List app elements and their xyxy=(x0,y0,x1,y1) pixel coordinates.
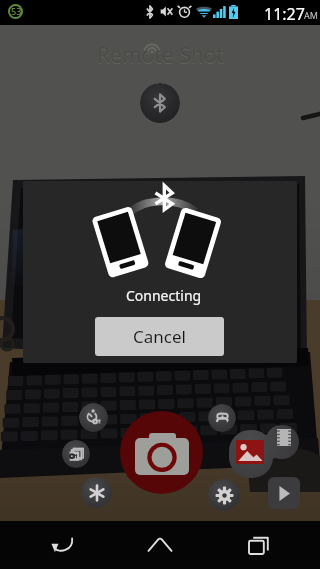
button[interactable]: Gallery xyxy=(228,423,300,481)
button[interactable]: Self timer xyxy=(79,403,108,432)
staticText: Cancel xyxy=(133,325,186,348)
staticText: Remote Shot xyxy=(97,42,224,71)
button[interactable]: Back xyxy=(26,521,98,569)
staticText: AM xyxy=(304,9,318,21)
staticText: 11:27 xyxy=(264,3,305,25)
button[interactable]: Settings xyxy=(208,479,240,511)
staticText: Remote Shot xyxy=(97,41,224,70)
button[interactable]: Burst mode xyxy=(62,440,90,468)
button[interactable]: Recents xyxy=(222,521,294,569)
button[interactable]: Flash xyxy=(81,477,112,508)
staticText: Connecting xyxy=(126,286,202,305)
button[interactable]: Bluetooth xyxy=(140,83,180,123)
button[interactable]: Cancel xyxy=(95,317,224,356)
button[interactable]: Shutter xyxy=(120,411,203,494)
button[interactable]: Play xyxy=(268,477,300,509)
button[interactable]: Switch camera xyxy=(208,404,236,432)
staticText: 53 xyxy=(11,5,22,17)
button[interactable]: Home xyxy=(124,521,196,569)
